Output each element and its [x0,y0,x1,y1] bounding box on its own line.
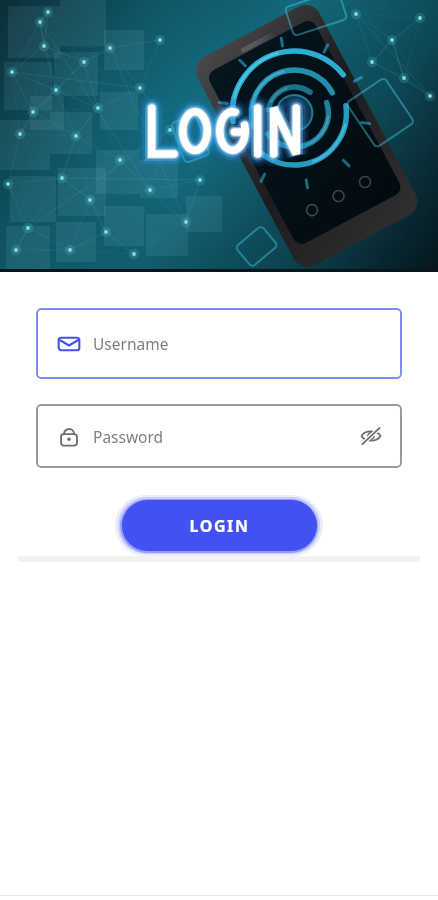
button[interactable]: Username [36,308,402,379]
button[interactable]: Show password [356,421,386,451]
button[interactable]: Password [36,404,402,468]
staticText: Password [93,426,164,447]
staticText: Username [93,333,169,354]
button[interactable]: LOGIN [122,500,317,551]
staticText: LOGIN [189,515,250,537]
